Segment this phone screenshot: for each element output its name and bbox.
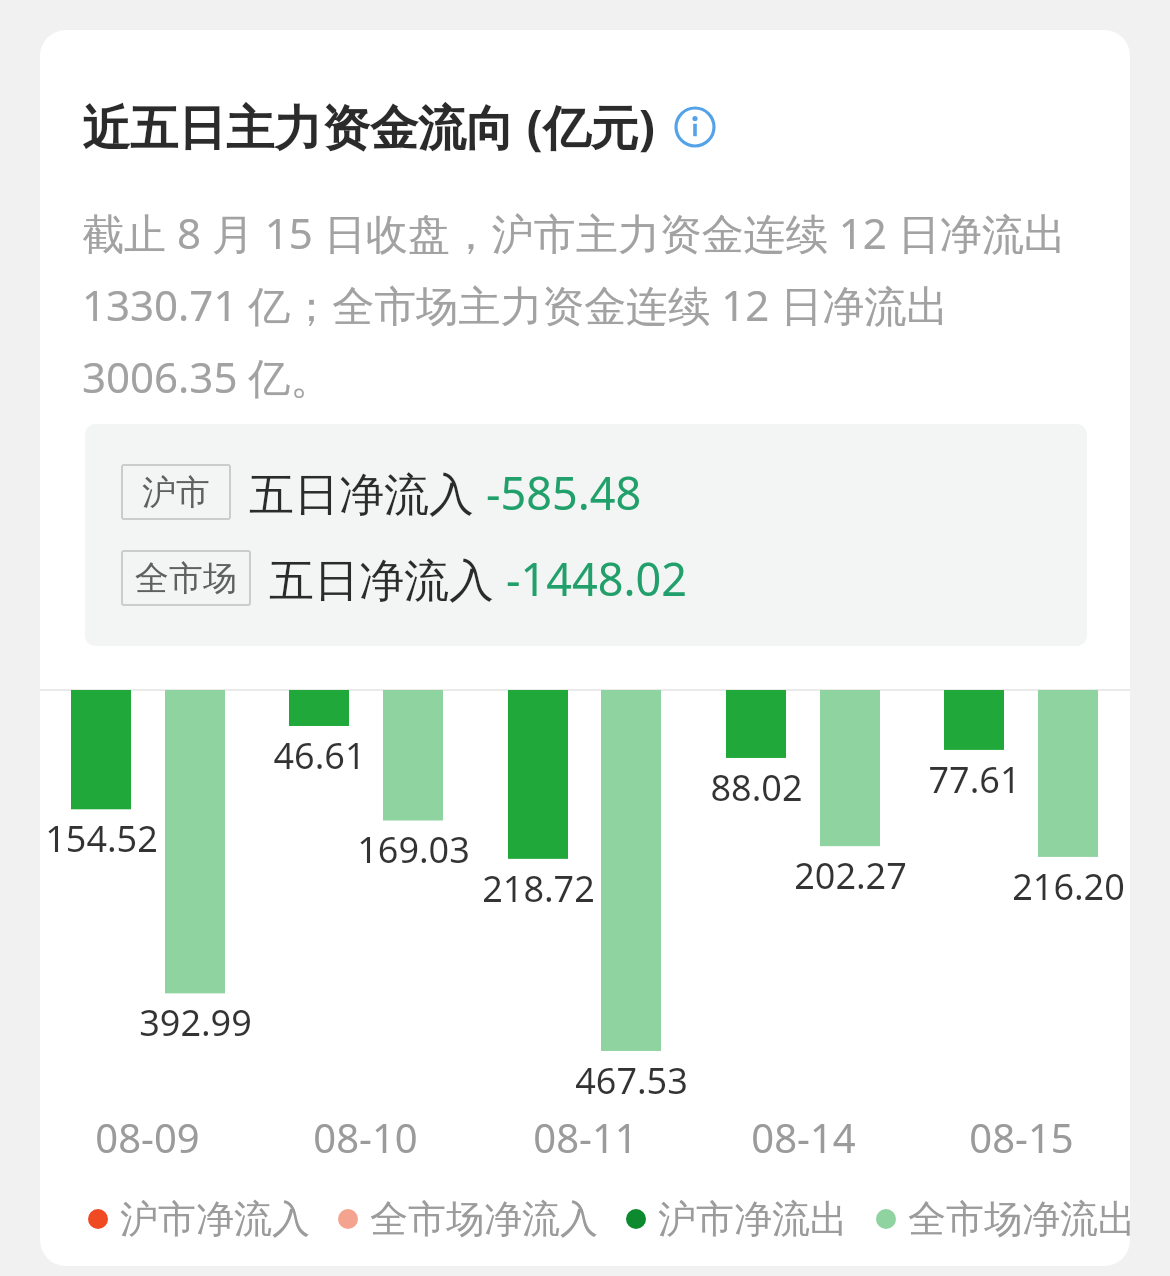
staticText: 08-14 [751,1110,856,1164]
staticText: 沪市净流入 [120,1195,310,1243]
staticText: 全市场净流入 [370,1195,598,1243]
staticText: 1330.71 亿；全市场主力资金连续 12 日净流出 [82,276,949,333]
button[interactable]: 沪市净流入 [88,1190,310,1248]
staticText: 全市场 [135,557,237,600]
staticText: 154.52 [45,814,158,863]
staticText: 218.72 [482,864,595,913]
staticText: 08-15 [969,1110,1074,1164]
staticText: 392.99 [139,998,252,1047]
button[interactable]: 全市场净流出 [876,1190,1130,1248]
staticText: 216.20 [1012,862,1125,911]
staticText: -585.48 [486,462,642,523]
staticText: 3006.35 亿。 [82,348,333,405]
button[interactable]: 全市场净流入 [338,1190,598,1248]
staticText: 202.27 [794,851,907,900]
staticText: 46.61 [273,731,366,780]
staticText: 77.61 [928,755,1021,804]
staticText: 全市场净流出 [908,1195,1130,1243]
staticText: 截止 8 月 15 日收盘，沪市主力资金连续 12 日净流出 [82,204,1066,261]
staticText: 近五日主力资金流向 (亿元) [82,94,656,160]
button[interactable]: 指标说明 [674,106,716,148]
staticText: 五日净流入 [249,462,486,523]
staticText: 467.53 [575,1056,688,1105]
button[interactable]: 沪市净流出 [626,1190,848,1248]
staticText: 08-09 [95,1110,200,1164]
staticText: 沪市 [142,471,210,514]
staticText: 169.03 [357,825,470,874]
staticText: 08-10 [313,1110,418,1164]
staticText: 沪市净流出 [658,1195,848,1243]
staticText: 88.02 [710,763,803,812]
staticText: 08-11 [533,1110,638,1164]
staticText: -1448.02 [506,548,687,609]
staticText: 五日净流入 [269,548,506,609]
